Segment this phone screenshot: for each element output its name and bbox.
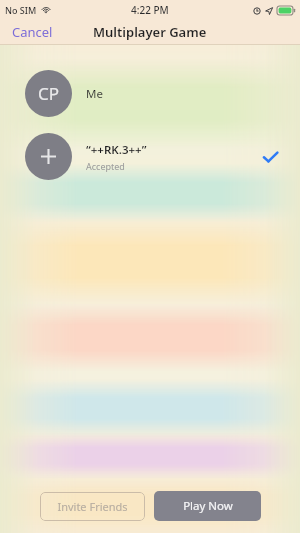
button[interactable]: “++RK.3++” <box>0 125 300 188</box>
button[interactable]: Cancel <box>8 20 57 44</box>
staticText: CP <box>38 82 60 105</box>
staticText: Invite Friends <box>57 499 128 514</box>
staticText: “++RK.3++” <box>86 142 147 158</box>
staticText: Multiplayer Game <box>93 23 207 41</box>
staticText: No SIM <box>5 4 37 16</box>
staticText: Play Now <box>183 498 233 514</box>
button[interactable]: Invite Friends <box>40 492 145 521</box>
other: Accepted <box>263 151 278 163</box>
staticText: Cancel <box>12 23 53 41</box>
button[interactable]: Play Now <box>154 491 261 521</box>
staticText: Me <box>86 86 103 102</box>
staticText: Accepted <box>86 160 125 172</box>
button[interactable]: CP <box>0 62 300 125</box>
staticText: 4:22 PM <box>131 3 169 17</box>
